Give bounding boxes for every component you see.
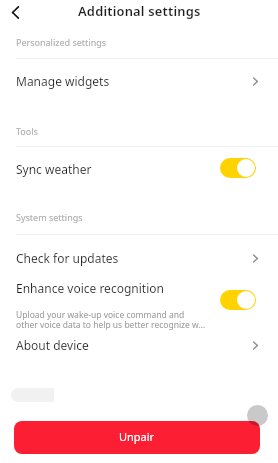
staticText: Unpair [119,429,155,444]
staticText: Tools [16,125,38,137]
button[interactable]: Toggle Enhance voice recognition [220,290,256,310]
staticText: Enhance voice recognition [16,280,220,296]
button[interactable]: Sync weather [0,158,278,180]
staticText: Personalized settings [16,36,107,48]
staticText: Check for updates [16,250,253,266]
button[interactable]: Unpair [14,421,260,454]
staticText: Additional settings [78,2,201,20]
staticText: Upload your wake-up voice command and ot… [16,309,206,330]
staticText: System settings [16,211,83,223]
staticText: About device [16,337,253,353]
button[interactable]: Back [4,0,26,24]
staticText: Sync weather [16,161,220,177]
button[interactable]: About device [0,334,278,356]
button[interactable]: Toggle Sync weather [220,158,256,178]
button[interactable]: Enhance voice recognition [0,277,278,299]
staticText: Manage widgets [16,73,253,89]
button[interactable]: Manage widgets [0,70,278,92]
button[interactable]: Check for updates [0,247,278,269]
button[interactable]: Scroll to top [247,405,268,426]
